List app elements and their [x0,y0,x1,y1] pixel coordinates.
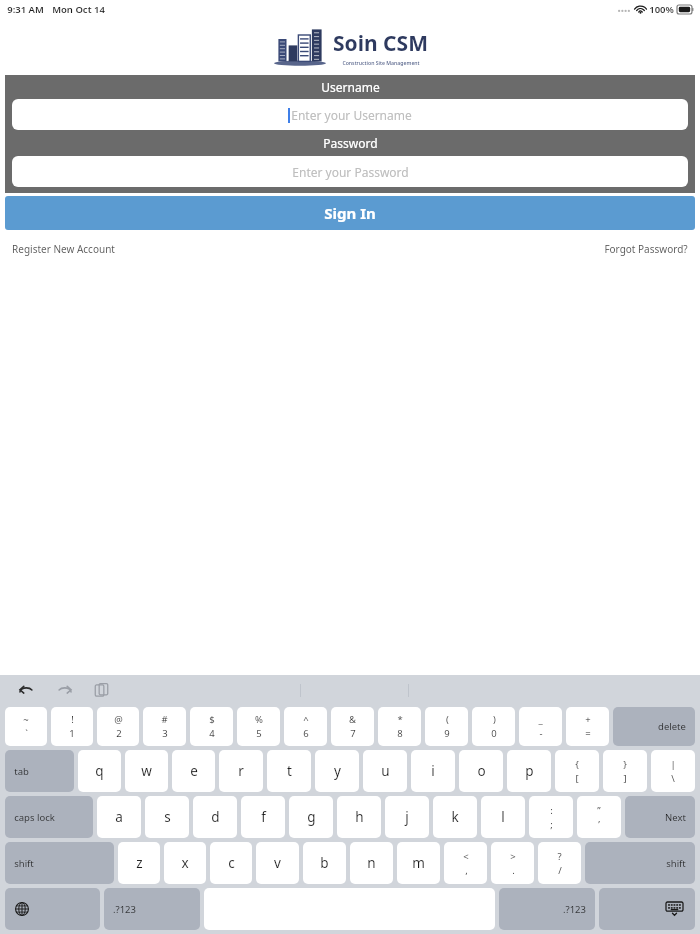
button[interactable]: q [78,750,121,792]
staticText: q [95,762,104,780]
button[interactable]: | [651,750,695,792]
button[interactable]: m [397,842,440,884]
staticText: $ [209,713,215,726]
staticText: Username [321,79,380,95]
button[interactable]: ? [538,842,581,884]
staticText: y [334,762,341,780]
button[interactable]: shift [5,842,114,884]
staticText: n [367,854,376,872]
button[interactable]: shift [585,842,695,884]
button[interactable]: k [433,796,477,838]
button[interactable]: ! [51,707,93,746]
staticText: Construction Site Management [342,59,420,66]
button[interactable]: ( [425,707,468,746]
button[interactable]: < [444,842,487,884]
staticText: Enter your Username [291,107,412,123]
staticText: t [287,762,292,780]
staticText: * [397,713,403,726]
staticText: ` [25,727,28,740]
button[interactable]: r [219,750,263,792]
staticText: o [477,762,486,780]
button[interactable]: g [289,796,333,838]
button[interactable]: ) [472,707,515,746]
staticText: ; [550,818,553,831]
button[interactable]: w [125,750,168,792]
button[interactable]: Enter your Username [12,99,688,130]
button[interactable]: # [143,707,186,746]
button[interactable]: Forgot Password? [604,242,688,256]
staticText: z [136,854,143,872]
button[interactable]: j [385,796,429,838]
button[interactable]: o [459,750,503,792]
staticText: shift [14,857,34,870]
staticText: % [255,713,263,726]
staticText: p [525,762,534,780]
button[interactable]: Register New Account [12,242,115,256]
button[interactable]: v [256,842,299,884]
button[interactable]: Globe [5,888,100,930]
button[interactable]: .?123 [104,888,200,930]
button[interactable]: x [164,842,206,884]
button[interactable]: _ [519,707,562,746]
button[interactable]: & [331,707,374,746]
button[interactable]: d [193,796,237,838]
staticText: Mon Oct 14 [52,3,105,16]
button[interactable]: p [507,750,551,792]
button[interactable]: l [481,796,525,838]
button[interactable]: delete [613,707,695,746]
button[interactable]: h [337,796,381,838]
staticText: a [115,808,123,826]
staticText: = [585,727,591,740]
button[interactable]: > [491,842,534,884]
button[interactable]: z [118,842,160,884]
staticText: ’ [598,818,600,831]
staticText: 2 [116,727,122,740]
button[interactable]: i [411,750,455,792]
button[interactable]: b [303,842,346,884]
button[interactable]: t [267,750,311,792]
button[interactable]: Hide keyboard [599,888,695,930]
button[interactable]: Undo [14,677,40,703]
staticText: ~ [23,713,29,726]
button[interactable]: a [97,796,141,838]
button[interactable]: caps lock [5,796,93,838]
button[interactable]: .?123 [499,888,595,930]
button[interactable]: e [172,750,215,792]
staticText: 9:31 AM [7,3,44,16]
button[interactable]: : [529,796,573,838]
button[interactable]: Paste [88,677,114,703]
staticText: f [261,808,266,826]
button[interactable]: $ [190,707,233,746]
button[interactable]: n [350,842,393,884]
button[interactable]: * [378,707,421,746]
staticText: ” [597,804,601,817]
button[interactable]: Redo [51,677,77,703]
button[interactable]: c [210,842,252,884]
button[interactable]: ” [577,796,621,838]
button[interactable]: Enter your Password [12,156,688,187]
button[interactable]: % [237,707,280,746]
staticText: shift [666,857,686,870]
staticText: 6 [303,727,309,740]
button[interactable]: s [145,796,189,838]
button[interactable]: ~ [5,707,47,746]
staticText: 5 [256,727,262,740]
staticText: k [451,808,459,826]
button[interactable]: { [555,750,599,792]
button[interactable]: Next [625,796,695,838]
button[interactable]: y [315,750,359,792]
staticText: u [381,762,390,780]
button[interactable]: tab [5,750,74,792]
staticText: # [161,713,168,726]
button[interactable]: ^ [284,707,327,746]
staticText: b [320,854,329,872]
button[interactable]: } [603,750,647,792]
button[interactable]: Sign In [5,196,695,230]
staticText: .?123 [113,903,136,916]
button[interactable]: f [241,796,285,838]
staticText: + [585,713,591,726]
button[interactable]: u [363,750,407,792]
button[interactable]: + [566,707,609,746]
button[interactable]: @ [97,707,139,746]
